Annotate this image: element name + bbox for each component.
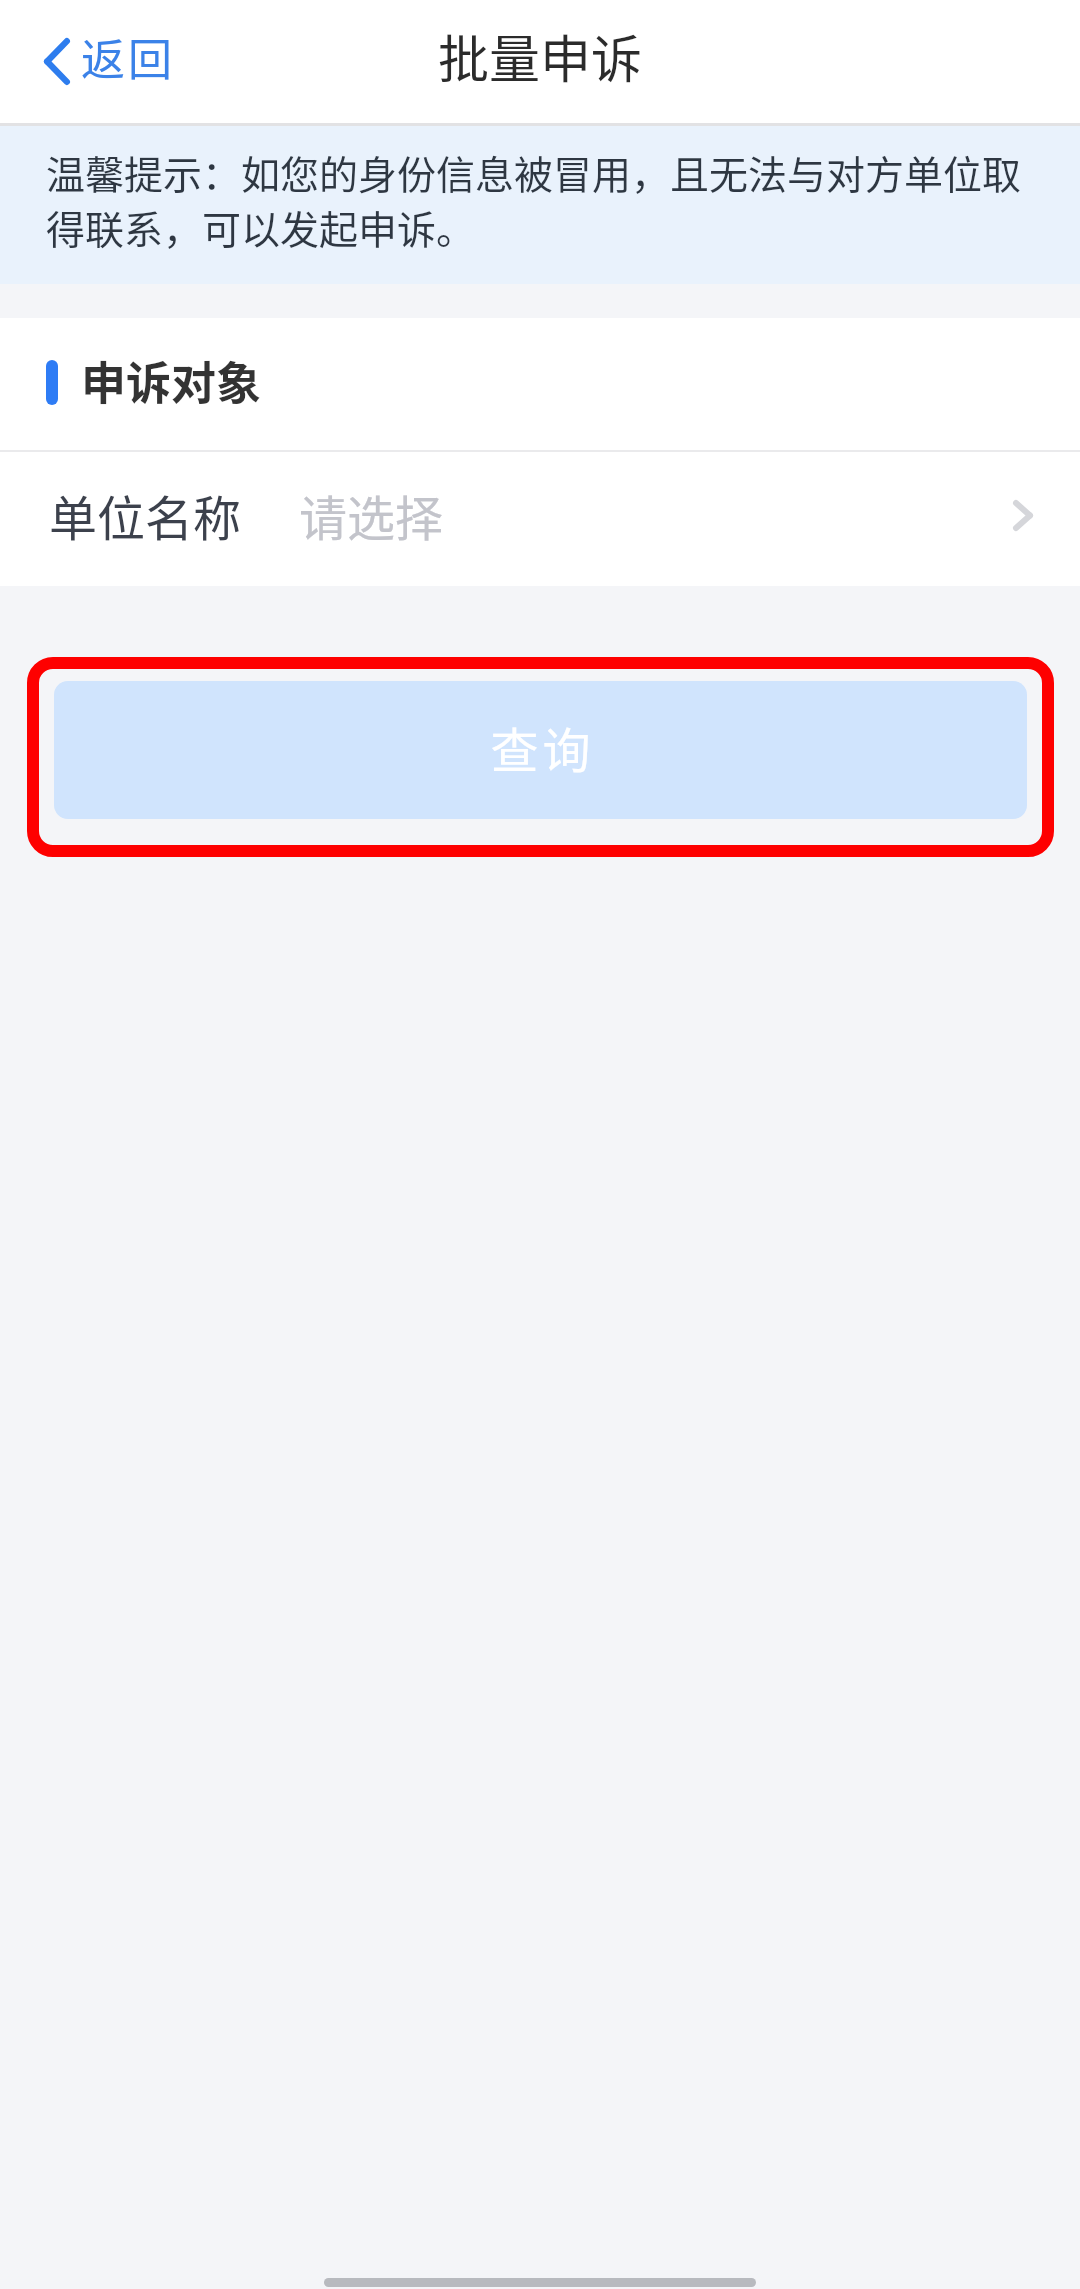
staticText: 返回 bbox=[81, 25, 175, 89]
staticText: 请选择 bbox=[299, 480, 444, 550]
button[interactable]: 返回 Back bbox=[34, 15, 183, 99]
staticText: 批量申诉 bbox=[438, 19, 643, 93]
staticText: 查询 bbox=[490, 712, 595, 782]
staticText: 申诉对象 bbox=[81, 348, 262, 413]
staticText: 单位名称 bbox=[49, 480, 242, 550]
button[interactable]: 单位名称 bbox=[0, 452, 1080, 586]
staticText: 温馨提示：如您的身份信息被冒用，且无法与对方单位取得联系，可以发起申诉。 bbox=[46, 145, 1035, 255]
other: 选择单位名称 bbox=[1013, 500, 1033, 531]
button[interactable]: 查询 bbox=[54, 681, 1027, 819]
